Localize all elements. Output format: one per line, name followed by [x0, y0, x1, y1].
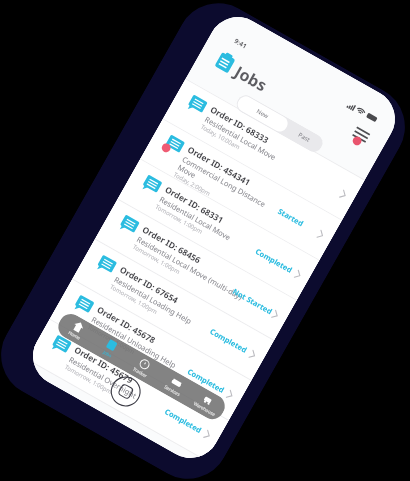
staticText: Order ID: 68456 [140, 224, 203, 267]
button[interactable]: Order ID: 68331 [117, 159, 319, 301]
staticText: Tracker [132, 365, 149, 379]
button[interactable]: Home [54, 310, 99, 350]
staticText: Residential Local Move [203, 114, 278, 163]
staticText: Tomorrow, 1:00pm [63, 363, 113, 396]
staticText: Tomorrow, 1:00pm [108, 283, 159, 316]
staticText: Order ID: 45679 [72, 344, 135, 387]
staticText: Today, 2:00pm [172, 171, 212, 198]
staticText: Order ID: 67654 [117, 264, 181, 307]
staticText: Completed [254, 246, 294, 275]
staticText: Home [67, 329, 82, 341]
button[interactable]: Order ID: 67654 [72, 239, 274, 381]
button[interactable]: New [235, 93, 290, 134]
staticText: Completed [208, 326, 249, 355]
button[interactable]: Order ID: 68456 [95, 199, 296, 341]
staticText: Completed [186, 366, 226, 395]
staticText: Order ID: 68333 [208, 104, 271, 146]
staticText: New [255, 107, 270, 121]
button[interactable]: Warehouse [185, 383, 229, 423]
staticText: Services [163, 383, 182, 397]
staticText: Tomorrow, 1:00pm [154, 203, 204, 236]
staticText: Started [276, 206, 306, 228]
button[interactable]: Services [152, 365, 197, 405]
staticText: Tomorrow, 1:00pm [131, 243, 181, 276]
button[interactable]: Order ID: 454341 [140, 119, 342, 261]
staticText: Past [297, 131, 312, 144]
staticText: Residential Loading Help [112, 274, 194, 326]
staticText: Today, 10:00am [199, 123, 241, 151]
staticText: Jobs [231, 61, 271, 97]
staticText: Order ID: 68331 [163, 184, 226, 227]
staticText: Order ID: 454341 [185, 144, 253, 189]
staticText: Warehouse [193, 400, 216, 417]
staticText: Jobs [102, 349, 113, 358]
staticText: Completed [163, 406, 204, 435]
staticText: Residential Local Move [158, 194, 233, 243]
staticText: Not Started [231, 286, 274, 316]
button[interactable]: Order ID: 45678 [49, 279, 251, 421]
button[interactable]: Tracker [120, 347, 165, 387]
button[interactable]: Order ID: 45679 [27, 319, 228, 461]
staticText: Order ID: 45678 [95, 304, 158, 347]
button[interactable]: Menu [347, 125, 375, 152]
staticText: Commercial Long Distance Move [176, 154, 268, 217]
staticText: Residential Unloading Help [90, 314, 178, 370]
button[interactable]: Past [282, 120, 326, 155]
button[interactable]: Jobs [87, 328, 132, 369]
staticText: Residential Local Move (multi-day) [135, 234, 244, 302]
staticText: Tomorrow, 1:00pm [86, 323, 136, 356]
staticText: Residential Overnight [67, 354, 139, 401]
button[interactable]: Order ID: 68333 [162, 79, 364, 221]
staticText: 9:41 [233, 36, 248, 50]
